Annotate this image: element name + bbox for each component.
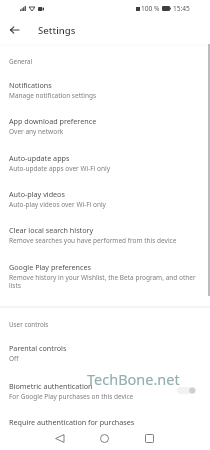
staticText: Clear local search history	[9, 225, 94, 235]
button[interactable]: Home	[94, 428, 114, 448]
staticText: Auto-play videos	[9, 189, 65, 199]
staticText: 15:45	[173, 4, 190, 13]
staticText: Remove searches you have performed from …	[9, 236, 177, 245]
button[interactable]: Auto-play videos	[0, 186, 210, 211]
staticText: Settings	[38, 24, 76, 37]
staticText: Google Play preferences	[9, 262, 91, 272]
staticText: Auto-play videos over Wi-Fi only	[9, 200, 106, 209]
staticText: Biometric authentication	[9, 381, 93, 391]
staticText: Parental controls	[9, 343, 67, 353]
staticText: TechBone.net	[87, 369, 180, 389]
staticText: User controls	[9, 320, 49, 329]
button[interactable]: Recent apps	[139, 428, 159, 448]
staticText: General	[9, 57, 33, 66]
staticText: App download preference	[9, 116, 97, 126]
button[interactable]: Back	[6, 22, 22, 38]
staticText: Auto-update apps	[9, 153, 70, 163]
button[interactable]: Back	[49, 428, 69, 448]
staticText: Auto-update apps over Wi-Fi only	[9, 164, 110, 173]
button[interactable]: Biometric authentication	[0, 378, 210, 403]
staticText: Off	[9, 354, 19, 363]
button[interactable]: Clear local search history	[0, 222, 210, 247]
button[interactable]: Require authentication for purchases	[0, 414, 210, 430]
button[interactable]: Parental controls	[0, 340, 210, 365]
button[interactable]: Auto-update apps	[0, 150, 210, 175]
staticText: Manage notification settings	[9, 91, 97, 100]
button[interactable]: Notifications	[0, 77, 210, 102]
staticText: For Google Play purchases on this device	[9, 392, 134, 401]
staticText: Notifications	[9, 80, 52, 90]
button[interactable]: Biometric authentication	[177, 386, 196, 395]
staticText: Over any network	[9, 127, 64, 136]
staticText: Remove history in your Wishlist, the Bet…	[9, 273, 198, 290]
button[interactable]: Google Play preferences	[0, 259, 210, 292]
button[interactable]: App download preference	[0, 113, 210, 138]
staticText: 100 %	[141, 4, 160, 13]
staticText: Require authentication for purchases	[9, 417, 135, 427]
